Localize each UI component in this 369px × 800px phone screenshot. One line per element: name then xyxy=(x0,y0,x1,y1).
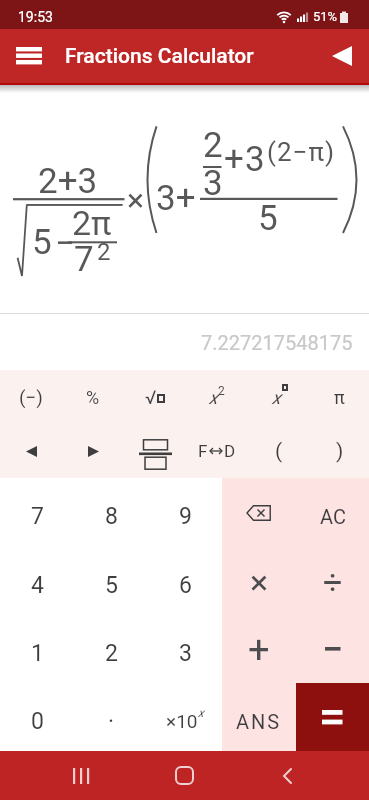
button[interactable]: ×10 xyxy=(148,683,222,751)
staticText: ×10 xyxy=(166,710,198,732)
staticText: 2 xyxy=(203,125,223,166)
staticText: × xyxy=(250,562,269,602)
staticText: 2 xyxy=(218,384,225,398)
button[interactable]: (−) xyxy=(0,370,62,424)
button[interactable] xyxy=(62,424,124,478)
button[interactable] xyxy=(6,31,52,81)
button[interactable]: ÷ xyxy=(296,547,369,615)
staticText: ) xyxy=(336,439,344,464)
staticText: + xyxy=(248,628,270,673)
staticText: 19:53 xyxy=(18,9,53,25)
staticText: 2π xyxy=(72,203,112,243)
button[interactable]: × xyxy=(222,547,296,615)
staticText: (2−π) xyxy=(267,137,335,167)
button[interactable] xyxy=(0,424,62,478)
staticText: ÷ xyxy=(323,562,343,602)
staticText: 3 xyxy=(179,640,192,667)
button[interactable]: · xyxy=(74,683,148,751)
staticText: 51% xyxy=(313,9,338,24)
staticText: π xyxy=(334,387,345,408)
button[interactable]: π xyxy=(310,370,369,424)
staticText: · xyxy=(108,708,115,735)
button[interactable]: ( xyxy=(248,424,310,478)
button[interactable] xyxy=(51,751,111,800)
button[interactable]: √ xyxy=(124,370,186,424)
staticText: x xyxy=(198,706,204,720)
button[interactable] xyxy=(296,615,369,683)
staticText: ( xyxy=(275,439,283,464)
button[interactable]: x xyxy=(186,370,248,424)
staticText: AC xyxy=(320,505,346,528)
staticText: 3 xyxy=(203,163,223,204)
staticText: 7 xyxy=(31,503,44,530)
staticText: D xyxy=(224,441,236,461)
staticText: 6 xyxy=(179,572,192,599)
staticText: F xyxy=(198,441,208,461)
staticText: − xyxy=(55,223,76,264)
staticText: 7 xyxy=(74,239,94,280)
button[interactable]: ) xyxy=(310,424,369,478)
button[interactable]: 3 xyxy=(148,615,222,683)
staticText: 2 xyxy=(105,640,118,667)
staticText: 5 xyxy=(258,198,278,239)
staticText: 5 xyxy=(32,222,52,263)
button[interactable]: 7 xyxy=(0,478,74,547)
button[interactable]: 0 xyxy=(0,683,74,751)
staticText: +3 xyxy=(224,139,266,180)
button[interactable] xyxy=(296,683,369,751)
staticText: x xyxy=(209,387,218,408)
staticText: 2+3 xyxy=(38,161,98,202)
button[interactable] xyxy=(257,751,317,800)
button[interactable]: F xyxy=(186,424,248,478)
staticText: 4 xyxy=(31,572,44,599)
staticText: 2 xyxy=(97,238,111,266)
staticText: √ xyxy=(145,386,157,408)
button[interactable]: AC xyxy=(296,478,369,547)
staticText: (−) xyxy=(19,386,43,408)
button[interactable] xyxy=(222,478,296,547)
staticText: 5 xyxy=(105,572,118,599)
button[interactable] xyxy=(154,751,215,800)
button[interactable]: 2 xyxy=(74,615,148,683)
button[interactable] xyxy=(320,29,364,83)
staticText: x xyxy=(272,387,281,408)
staticText: Fractions Calculator xyxy=(65,44,254,69)
button[interactable]: % xyxy=(62,370,124,424)
staticText: 3+ xyxy=(156,178,196,219)
staticText: 7.227217548175 xyxy=(201,331,353,354)
button[interactable]: 1 xyxy=(0,615,74,683)
button[interactable]: + xyxy=(222,615,296,683)
staticText: 9 xyxy=(179,503,192,530)
staticText: 0 xyxy=(31,708,44,735)
button[interactable]: 9 xyxy=(148,478,222,547)
staticText: 8 xyxy=(105,503,118,530)
button[interactable]: x xyxy=(248,370,310,424)
button[interactable]: 5 xyxy=(74,547,148,615)
button[interactable] xyxy=(124,424,186,478)
staticText: 1 xyxy=(31,640,44,667)
button[interactable]: ANS xyxy=(222,683,296,751)
button[interactable]: 8 xyxy=(74,478,148,547)
button[interactable]: 6 xyxy=(148,547,222,615)
staticText: ANS xyxy=(236,710,282,733)
button[interactable]: 4 xyxy=(0,547,74,615)
staticText: × xyxy=(127,181,145,219)
staticText: % xyxy=(86,387,100,408)
